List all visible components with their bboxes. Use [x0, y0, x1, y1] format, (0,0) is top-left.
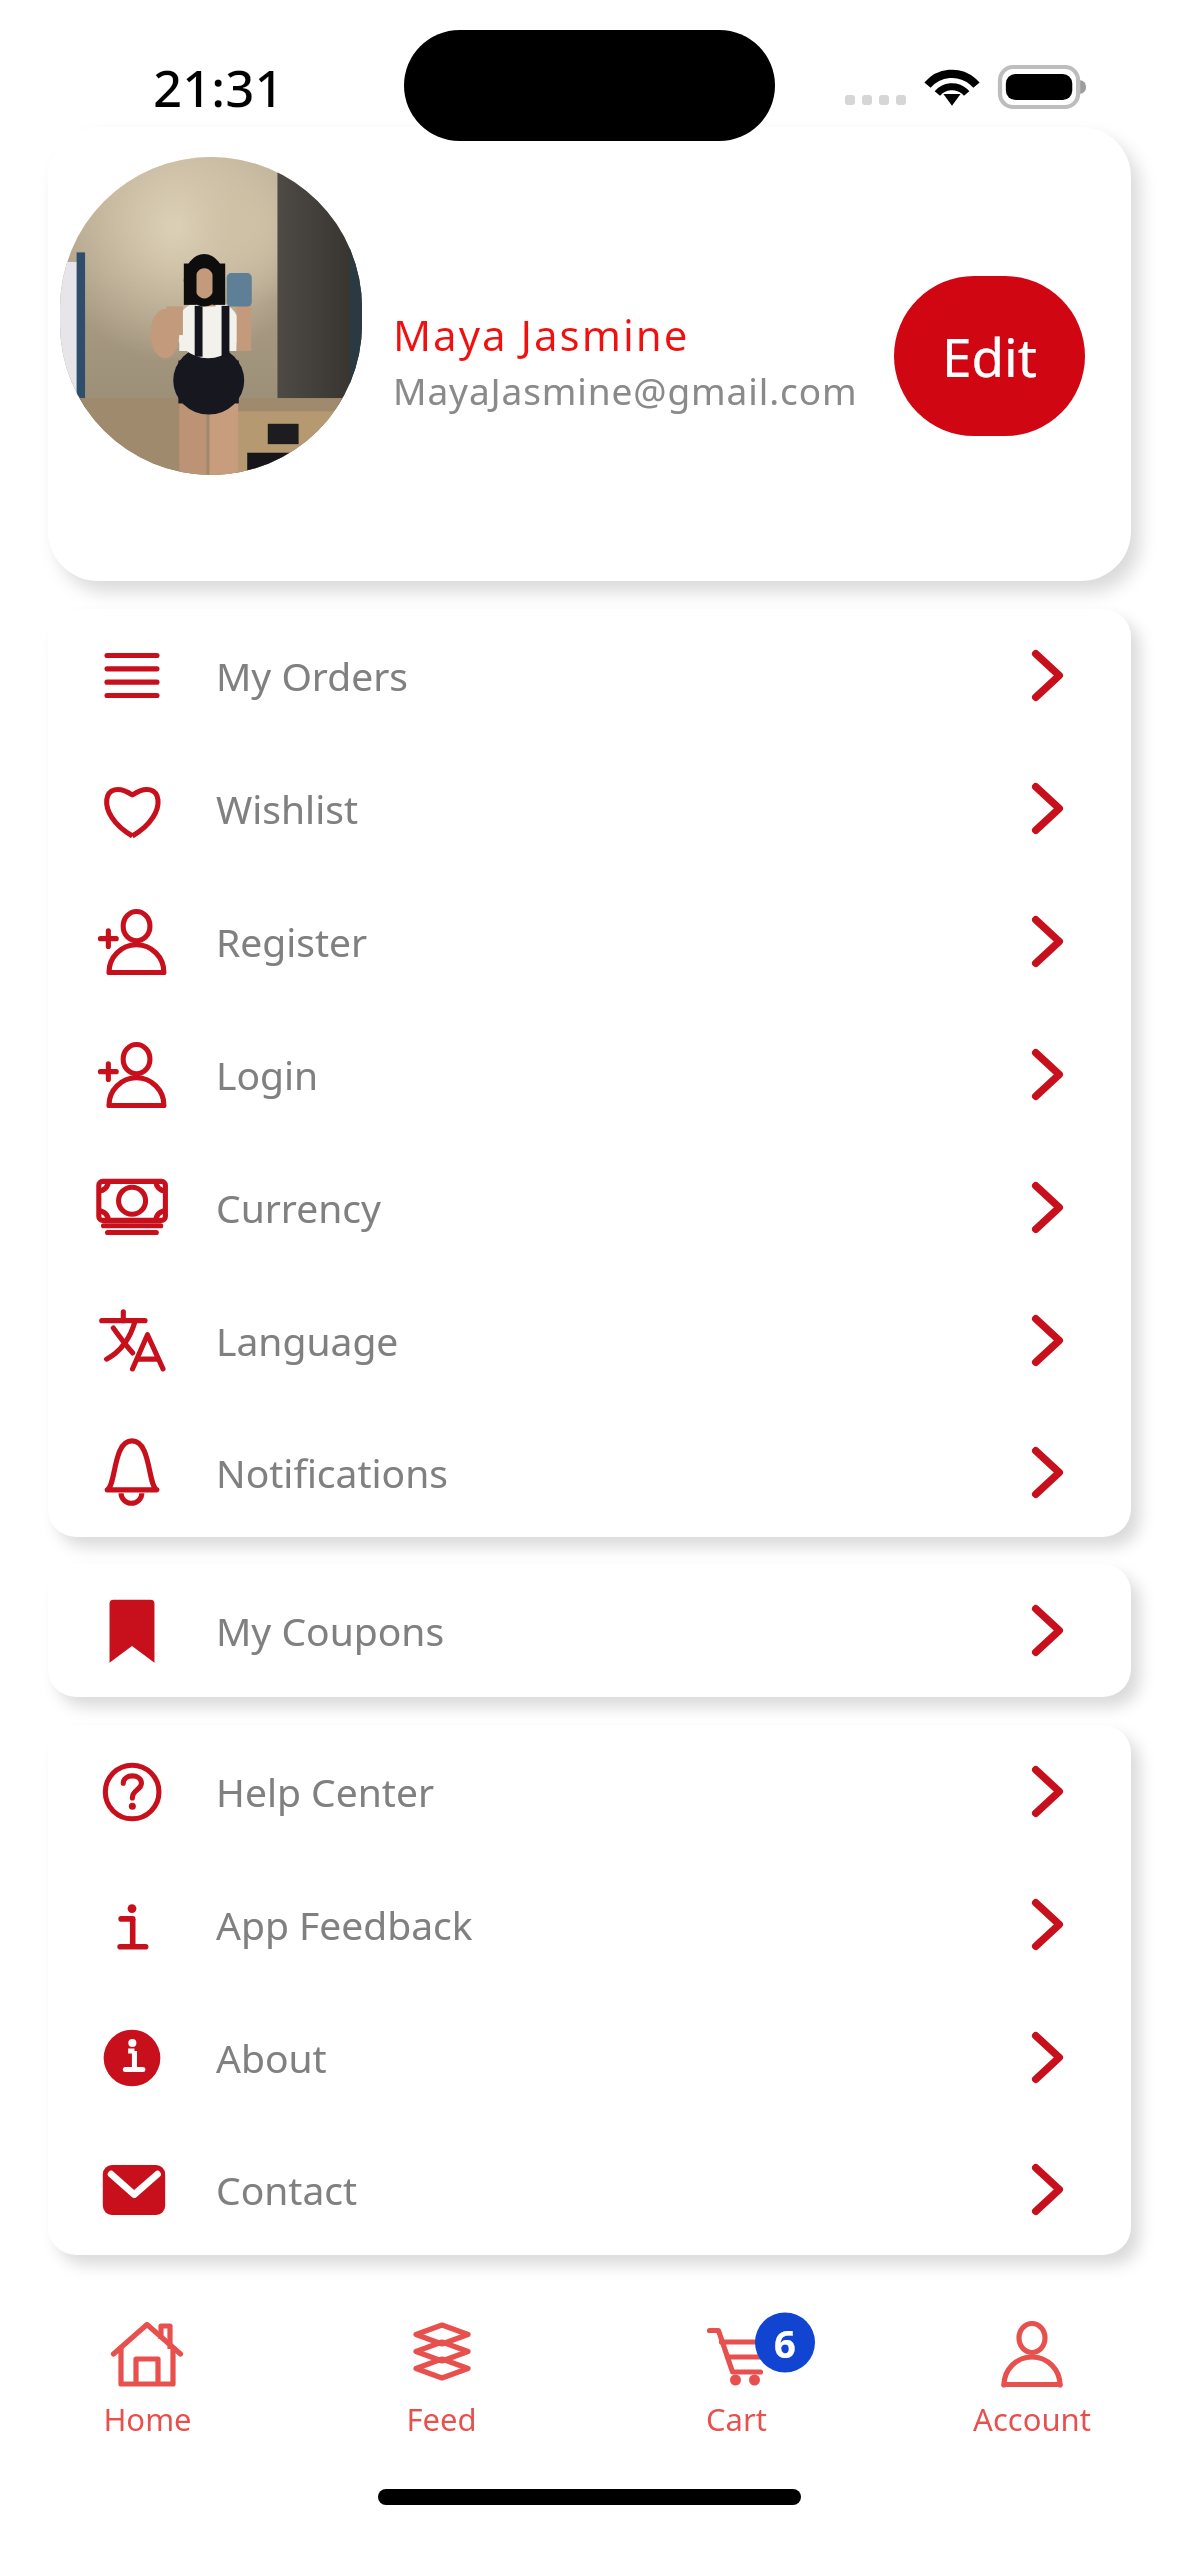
- staticText: Cart: [706, 2398, 767, 2440]
- button[interactable]: App Feedback: [48, 1858, 1131, 1991]
- staticText: Feed: [406, 2398, 477, 2440]
- button[interactable]: Home: [0, 2252, 294, 2556]
- staticText: Language: [216, 1314, 399, 1367]
- staticText: Help Center: [216, 1765, 435, 1818]
- staticText: Home: [103, 2398, 192, 2440]
- button[interactable]: My Coupons: [48, 1564, 1131, 1697]
- button[interactable]: Notifications: [48, 1407, 1131, 1537]
- button[interactable]: 6: [589, 2252, 884, 2556]
- staticText: Login: [216, 1048, 319, 1101]
- button[interactable]: Account: [884, 2252, 1179, 2556]
- staticText: Register: [216, 915, 368, 968]
- staticText: 21:31: [153, 52, 284, 121]
- staticText: MayaJasmine@gmail.com: [393, 365, 858, 415]
- button[interactable]: Edit: [894, 276, 1085, 436]
- staticText: 6: [774, 2317, 796, 2369]
- staticText: My Orders: [216, 649, 408, 702]
- button[interactable]: Profile: Maya Jasmine: [48, 127, 1131, 581]
- staticText: Notifications: [216, 1446, 448, 1499]
- button[interactable]: Contact: [48, 2124, 1131, 2255]
- button[interactable]: Register: [48, 875, 1131, 1008]
- staticText: Maya Jasmine: [393, 306, 690, 363]
- button[interactable]: Wishlist: [48, 742, 1131, 875]
- button[interactable]: Currency: [48, 1141, 1131, 1274]
- staticText: About: [216, 2031, 327, 2084]
- button[interactable]: Help Center: [48, 1725, 1131, 1858]
- button[interactable]: Login: [48, 1008, 1131, 1141]
- button[interactable]: My Orders: [48, 609, 1131, 742]
- staticText: Edit: [942, 320, 1037, 392]
- button[interactable]: About: [48, 1991, 1131, 2124]
- staticText: My Coupons: [216, 1604, 445, 1657]
- staticText: Wishlist: [216, 782, 358, 835]
- staticText: Account: [973, 2398, 1091, 2440]
- staticText: Contact: [216, 2163, 358, 2216]
- button[interactable]: Feed: [294, 2252, 589, 2556]
- staticText: Currency: [216, 1181, 381, 1234]
- button[interactable]: Language: [48, 1274, 1131, 1407]
- staticText: App Feedback: [216, 1898, 473, 1951]
